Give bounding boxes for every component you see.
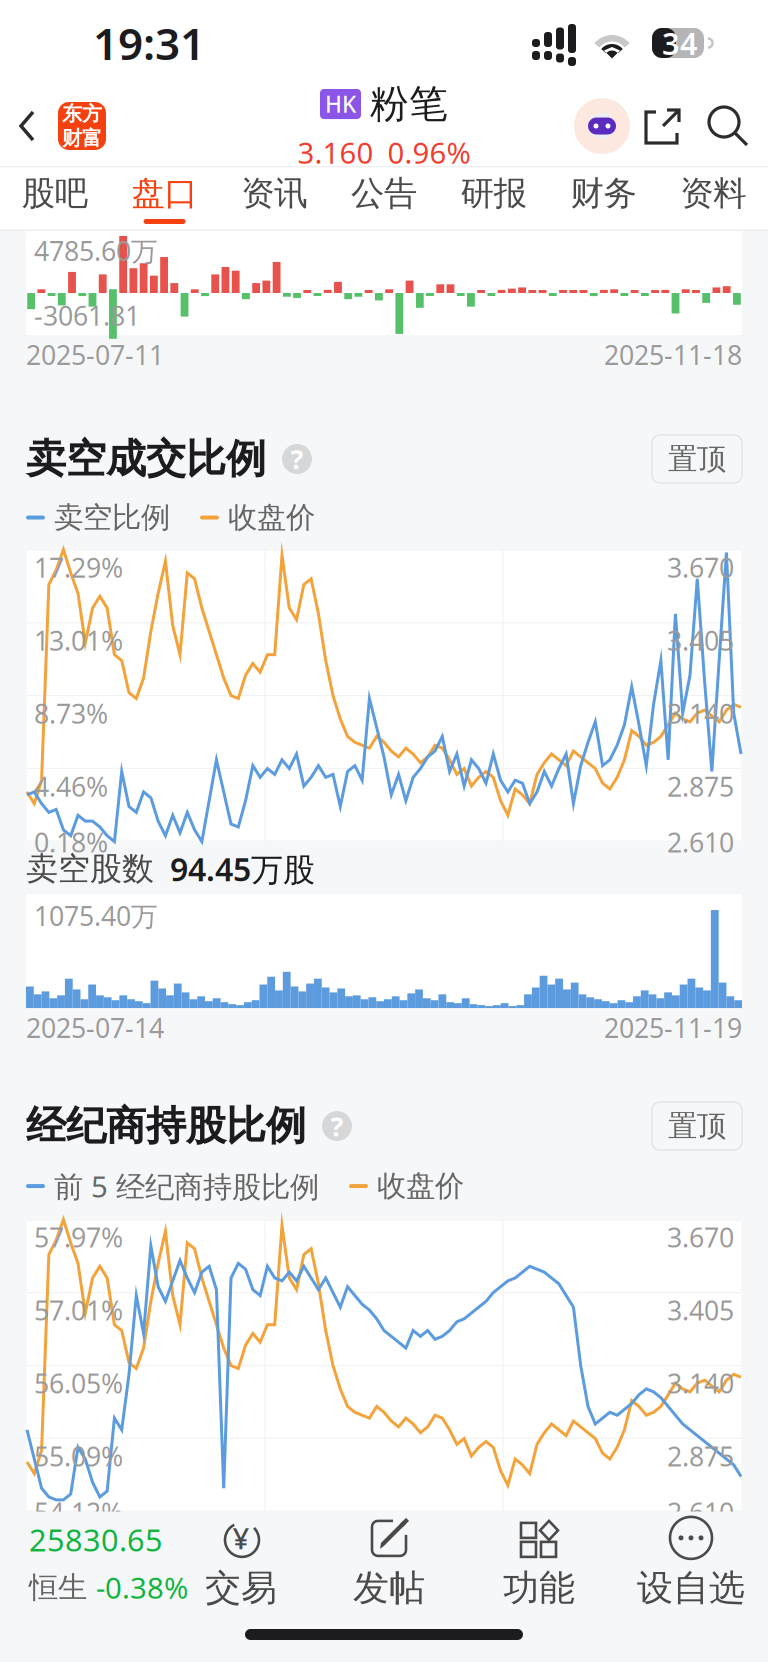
staticText: 经纪商持股比例 bbox=[26, 1101, 306, 1151]
button[interactable]: 设自选 bbox=[614, 1513, 768, 1613]
staticText: ? bbox=[330, 1108, 343, 1144]
staticText: 2025-11-18 bbox=[604, 337, 742, 372]
button[interactable]: Help bbox=[306, 1107, 362, 1145]
staticText: 34 bbox=[662, 23, 698, 63]
button[interactable]: 股吧 bbox=[0, 167, 110, 229]
staticText: 收盘价 bbox=[377, 1168, 464, 1204]
staticText: 粉笔 bbox=[370, 80, 448, 128]
staticText: 财富 bbox=[62, 126, 102, 151]
staticText: 发帖 bbox=[353, 1566, 425, 1610]
staticText: 57.01% bbox=[34, 1293, 123, 1328]
staticText: 3.140 bbox=[667, 1366, 734, 1401]
button[interactable]: Back bbox=[0, 87, 116, 165]
staticText: 盘口 bbox=[132, 173, 198, 214]
staticText: 前 5 经纪商持股比例 bbox=[54, 1167, 319, 1206]
staticText: -0.38% bbox=[96, 1568, 188, 1607]
staticText: 17.29% bbox=[34, 550, 123, 585]
staticText: 功能 bbox=[503, 1566, 575, 1610]
staticText: 0.18% bbox=[34, 824, 108, 860]
button[interactable]: 资料 bbox=[658, 167, 768, 229]
staticText: 置顶 bbox=[668, 441, 726, 477]
staticText: 收盘价 bbox=[228, 499, 315, 535]
staticText: 2.875 bbox=[667, 769, 734, 804]
staticText: ? bbox=[290, 441, 303, 477]
staticText: 财务 bbox=[570, 173, 636, 214]
staticText: 资料 bbox=[680, 173, 746, 214]
button[interactable]: 财务 bbox=[549, 167, 658, 229]
button[interactable]: 25830.65 bbox=[0, 1513, 163, 1613]
staticText: 0.96% bbox=[387, 133, 470, 172]
staticText: 57.97% bbox=[34, 1220, 123, 1255]
staticText: 2.610 bbox=[667, 1494, 734, 1530]
staticText: 54.12% bbox=[34, 1494, 123, 1530]
staticText: 1075.40万 bbox=[34, 898, 158, 933]
button[interactable]: AI assistant bbox=[574, 98, 630, 154]
staticText: 3.140 bbox=[667, 696, 734, 731]
staticText: 3.405 bbox=[667, 1293, 734, 1328]
button[interactable]: 资讯 bbox=[219, 167, 329, 229]
staticText: 8.73% bbox=[34, 696, 108, 731]
staticText: 2025-11-19 bbox=[604, 1010, 742, 1045]
staticText: 资讯 bbox=[241, 173, 307, 214]
staticText: 3.160 bbox=[297, 133, 373, 172]
staticText: -3061.81 bbox=[34, 298, 140, 333]
staticText: 2025-07-14 bbox=[26, 1010, 164, 1045]
staticText: 4.46% bbox=[34, 769, 108, 804]
staticText: 3.670 bbox=[667, 550, 734, 585]
staticText: 3.405 bbox=[667, 623, 734, 658]
staticText: 公告 bbox=[351, 173, 417, 214]
staticText: 13.01% bbox=[34, 623, 123, 658]
staticText: 3.670 bbox=[667, 1220, 734, 1255]
staticText: 卖空股数 bbox=[26, 849, 154, 888]
button[interactable]: Search bbox=[696, 92, 768, 160]
staticText: HK bbox=[325, 89, 356, 119]
button[interactable]: ¥ bbox=[168, 1513, 314, 1613]
staticText: 2.875 bbox=[667, 1439, 734, 1474]
staticText: 19:31 bbox=[93, 14, 205, 72]
button[interactable]: 研报 bbox=[439, 167, 549, 229]
button[interactable]: 功能 bbox=[464, 1513, 614, 1613]
staticText: 股吧 bbox=[22, 173, 88, 214]
button[interactable]: 置顶 bbox=[652, 1102, 742, 1150]
staticText: 东方 bbox=[62, 101, 102, 126]
button[interactable]: 发帖 bbox=[314, 1513, 464, 1613]
staticText: 恒生 bbox=[29, 1569, 87, 1605]
staticText: 25830.65 bbox=[29, 1519, 163, 1560]
staticText: 4785.60万 bbox=[34, 233, 158, 268]
staticText: 置顶 bbox=[668, 1108, 726, 1144]
staticText: ¥ bbox=[232, 1518, 249, 1557]
button[interactable]: 盘口 bbox=[110, 167, 219, 229]
staticText: 94.45万股 bbox=[170, 848, 315, 890]
staticText: 55.09% bbox=[34, 1439, 123, 1474]
staticText: 交易 bbox=[205, 1566, 277, 1610]
button[interactable]: Share bbox=[630, 91, 696, 161]
staticText: 2.610 bbox=[667, 824, 734, 860]
staticText: 卖空成交比例 bbox=[26, 434, 266, 483]
staticText: 设自选 bbox=[637, 1566, 745, 1610]
button[interactable]: 公告 bbox=[329, 167, 439, 229]
staticText: 卖空比例 bbox=[54, 499, 170, 535]
staticText: 56.05% bbox=[34, 1366, 123, 1401]
button[interactable]: 置顶 bbox=[652, 435, 742, 483]
staticText: 研报 bbox=[461, 173, 527, 214]
staticText: 2025-07-11 bbox=[26, 337, 164, 372]
button[interactable]: Help bbox=[266, 440, 322, 478]
